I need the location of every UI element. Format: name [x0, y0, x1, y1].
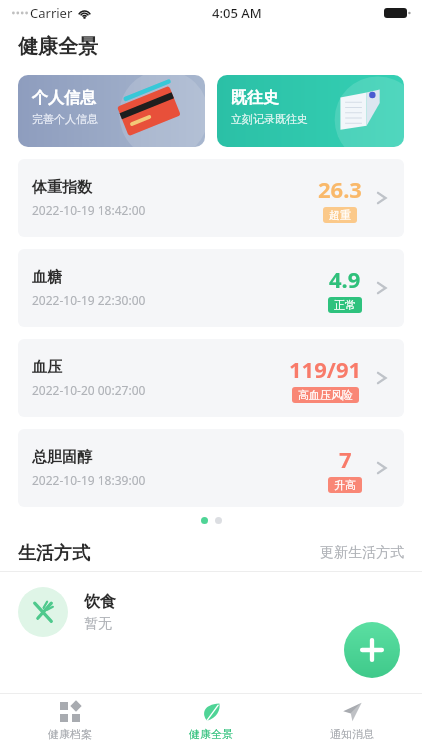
staticText: 生活方式	[18, 542, 90, 565]
staticText: 高血压风险	[298, 388, 353, 402]
button[interactable]: 血压	[18, 339, 404, 417]
button[interactable]: 健康档案	[0, 694, 140, 750]
staticText: 更新生活方式	[320, 544, 404, 562]
button[interactable]: Add	[344, 622, 400, 678]
staticText: 暂无	[84, 615, 112, 633]
staticText: 2022-10-20 00:27:00	[32, 382, 146, 398]
staticText: 超重	[329, 208, 351, 222]
button[interactable]: 总胆固醇	[18, 429, 404, 507]
button[interactable]: 健康全景	[140, 694, 281, 750]
staticText: 既往史	[231, 88, 279, 108]
staticText: 26.3	[318, 174, 362, 204]
staticText: 正常	[334, 298, 356, 312]
staticText: 2022-10-19 18:39:00	[32, 472, 146, 488]
button[interactable]: 饮食	[18, 572, 404, 652]
staticText: 119/91	[289, 354, 362, 384]
staticText: 4:05 AM	[212, 4, 262, 22]
button[interactable]: 体重指数	[18, 159, 404, 237]
button[interactable]: 更新生活方式	[320, 544, 404, 562]
staticText: 2022-10-19 22:30:00	[32, 292, 146, 308]
staticText: 2022-10-19 18:42:00	[32, 202, 146, 218]
staticText: 健康档案	[48, 727, 92, 741]
staticText: 4.9	[329, 264, 361, 294]
staticText: 总胆固醇	[32, 448, 92, 467]
staticText: 升高	[334, 478, 356, 492]
button[interactable]: 既往史	[217, 75, 404, 147]
staticText: 饮食	[84, 592, 116, 612]
staticText: 通知消息	[330, 727, 374, 741]
button[interactable]: 通知消息	[281, 694, 422, 750]
staticText: 血糖	[32, 268, 62, 287]
staticText: 7	[339, 444, 352, 474]
button[interactable]: 个人信息	[18, 75, 205, 147]
staticText: 健康全景	[189, 727, 233, 741]
staticText: Carrier	[30, 4, 73, 22]
staticText: 血压	[32, 358, 62, 377]
staticText: 立刻记录既往史	[231, 112, 308, 126]
staticText: 完善个人信息	[32, 112, 98, 126]
staticText: 个人信息	[32, 88, 96, 108]
staticText: 体重指数	[32, 178, 92, 197]
button[interactable]: 血糖	[18, 249, 404, 327]
staticText: 健康全景	[18, 34, 98, 59]
